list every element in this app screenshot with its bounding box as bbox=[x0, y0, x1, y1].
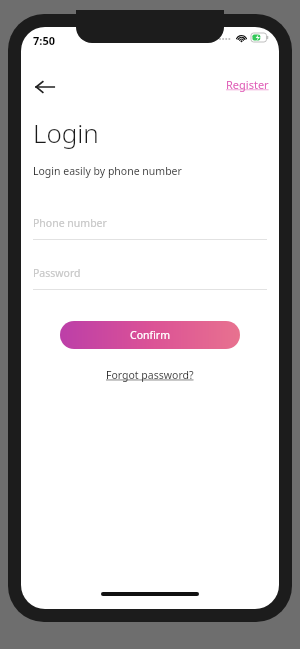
button[interactable]: Phone number bbox=[33, 216, 267, 240]
staticText: 7:50 bbox=[33, 33, 55, 48]
staticText: Forgot password? bbox=[106, 368, 194, 382]
staticText: Password bbox=[33, 266, 81, 280]
staticText: Login bbox=[33, 115, 99, 150]
staticText: Register bbox=[226, 77, 269, 92]
staticText: Confirm bbox=[130, 328, 170, 342]
button[interactable]: Password bbox=[33, 266, 267, 290]
staticText: Phone number bbox=[33, 216, 107, 230]
button[interactable]: Confirm bbox=[60, 321, 240, 349]
staticText: Login easily by phone number bbox=[33, 164, 182, 178]
button[interactable]: Register bbox=[222, 71, 273, 98]
button[interactable]: Forgot password? bbox=[102, 365, 198, 385]
button[interactable]: Back bbox=[27, 69, 63, 105]
